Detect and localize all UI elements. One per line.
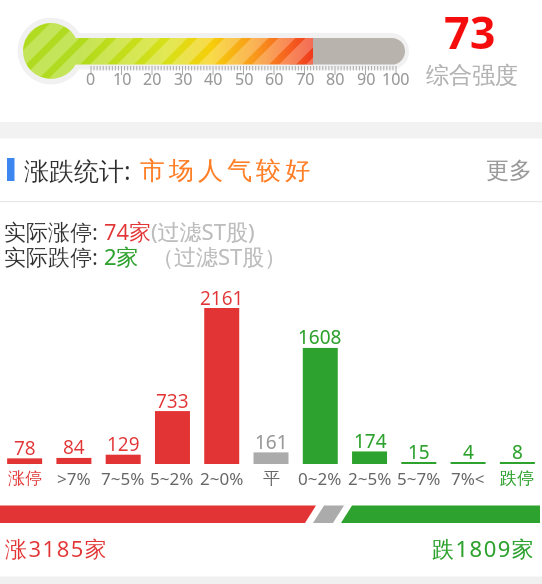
staticText: 更多 [486, 156, 532, 185]
staticText: 2家 [104, 241, 139, 271]
staticText: 涨停 [8, 468, 42, 489]
staticText: 7%< [451, 467, 485, 490]
staticText: 实际跌停: [4, 241, 98, 271]
staticText: >7% [57, 467, 91, 490]
button[interactable]: 更多 [332, 136, 532, 204]
staticText: 实际涨停: [4, 216, 98, 246]
staticText: 50 [235, 68, 254, 90]
staticText: 90 [357, 68, 376, 90]
staticText: 2~0% [200, 467, 244, 490]
staticText: 平 [263, 468, 280, 489]
staticText: 4 [463, 439, 474, 465]
staticText: 733 [156, 388, 189, 414]
staticText: 涨3185家 [5, 533, 109, 563]
staticText: 60 [265, 68, 284, 90]
staticText: 174 [354, 428, 387, 454]
staticText: 5~7% [397, 467, 441, 490]
staticText: 市场人气较好 [138, 155, 312, 186]
staticText: 100 [382, 68, 410, 90]
staticText: 1608 [298, 324, 342, 350]
staticText: 综合强度 [426, 61, 518, 90]
staticText: 73 [444, 1, 496, 62]
staticText: （过滤ST股） [152, 241, 287, 271]
button[interactable] [0, 148, 400, 192]
staticText: 跌停 [500, 468, 534, 489]
staticText: 129 [107, 431, 140, 457]
staticText: 84 [63, 434, 85, 460]
staticText: 涨跌统计: [24, 153, 131, 187]
staticText: 70 [296, 68, 315, 90]
staticText: 2161 [200, 285, 244, 311]
staticText: 跌1809家 [432, 533, 536, 563]
staticText: 15 [408, 439, 430, 465]
staticText: 10 [113, 68, 132, 90]
staticText: 7~5% [101, 467, 145, 490]
staticText: 161 [255, 429, 288, 455]
staticText: 20 [143, 68, 162, 90]
staticText: 80 [326, 68, 345, 90]
staticText: 74家 [104, 216, 152, 246]
staticText: 2~5% [348, 467, 392, 490]
staticText: 8 [512, 439, 523, 465]
staticText: 78 [14, 435, 36, 461]
staticText: 40 [204, 68, 223, 90]
staticText: 0 [86, 68, 96, 90]
staticText: 30 [174, 68, 193, 90]
staticText: 0~2% [298, 467, 342, 490]
staticText: (过滤ST股) [151, 216, 255, 246]
staticText: 5~2% [150, 467, 194, 490]
